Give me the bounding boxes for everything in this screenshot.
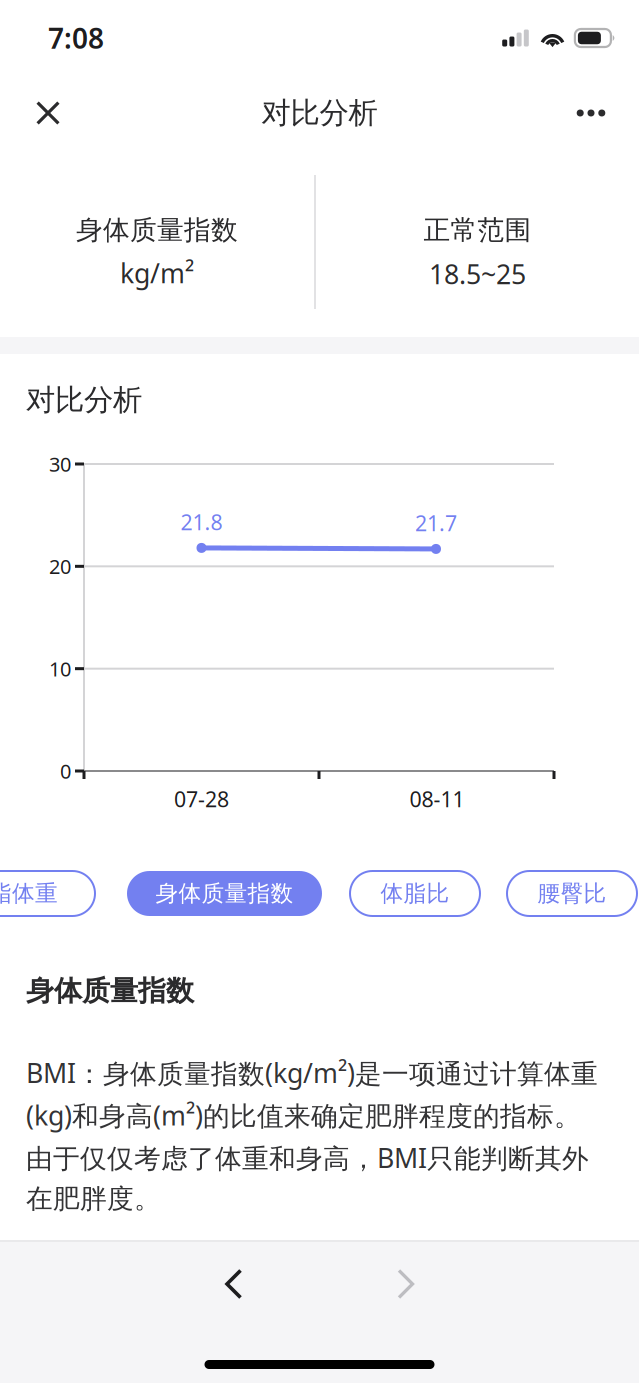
staticText: 身体质量指数 bbox=[26, 974, 194, 1008]
staticText: 08-11 bbox=[409, 785, 464, 813]
staticText: 30 bbox=[49, 451, 71, 477]
staticText: 10 bbox=[49, 655, 71, 682]
button[interactable]: 身体质量指数 bbox=[127, 871, 322, 916]
button[interactable]: Next bbox=[370, 1253, 442, 1315]
staticText: kg/m² bbox=[120, 255, 194, 291]
staticText: 去脂体重 bbox=[0, 880, 58, 907]
button[interactable]: 体脂比 bbox=[350, 871, 480, 916]
staticText: 正常范围 bbox=[423, 214, 531, 246]
staticText: 腰臀比 bbox=[537, 880, 606, 907]
staticText: 身体质量指数 bbox=[76, 214, 238, 246]
staticText: 体脂比 bbox=[380, 880, 449, 907]
staticText: 对比分析 bbox=[261, 95, 377, 131]
button[interactable]: More options bbox=[562, 87, 620, 139]
button[interactable]: 腰臀比 bbox=[507, 871, 637, 916]
staticText: 18.5~25 bbox=[429, 256, 526, 292]
button[interactable]: Previous bbox=[198, 1253, 270, 1315]
staticText: 0 bbox=[60, 758, 71, 784]
staticText: 7:08 bbox=[48, 19, 104, 57]
staticText: 对比分析 bbox=[26, 382, 142, 418]
button[interactable]: 去脂体重 bbox=[0, 871, 95, 916]
staticText: BMI：身体质量指数(kg/m²)是一项通过计算体重(kg)和身高(m²)的比值… bbox=[26, 1055, 598, 1215]
staticText: 07-28 bbox=[174, 785, 229, 813]
staticText: 20 bbox=[49, 553, 71, 580]
staticText: 身体质量指数 bbox=[155, 880, 293, 907]
staticText: 21.7 bbox=[415, 509, 457, 537]
button[interactable]: Close bbox=[22, 87, 74, 139]
staticText: 21.8 bbox=[180, 508, 222, 536]
